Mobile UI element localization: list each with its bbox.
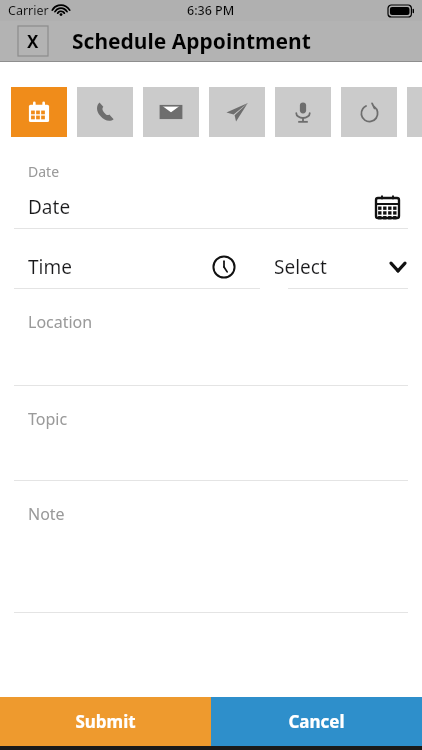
staticText: Topic (28, 408, 68, 430)
staticText: Select (274, 254, 327, 280)
button[interactable]: Location (0, 289, 422, 386)
button[interactable]: Record (275, 87, 331, 137)
staticText: 6:36 PM (187, 2, 235, 19)
staticText: Time (28, 254, 72, 280)
button[interactable]: Note (0, 481, 422, 613)
button[interactable]: Cancel (211, 697, 422, 746)
button[interactable]: Close (18, 26, 48, 56)
button[interactable]: History (341, 87, 397, 137)
staticText: Cancel (288, 710, 345, 733)
staticText: Note (28, 503, 65, 525)
staticText: Carrier (8, 2, 49, 19)
staticText: Date (28, 194, 71, 220)
button[interactable]: Select (274, 251, 408, 283)
button[interactable]: Pick date (372, 192, 402, 222)
button[interactable]: Time (0, 251, 246, 283)
button[interactable]: Call (77, 87, 133, 137)
button[interactable]: Email (143, 87, 199, 137)
other: Pick time (210, 253, 238, 281)
staticText: Submit (75, 710, 136, 733)
button[interactable]: Topic (0, 386, 422, 481)
button[interactable]: Send (209, 87, 265, 137)
staticText: Location (28, 311, 93, 333)
button[interactable]: Date (0, 192, 422, 222)
staticText: X (27, 30, 39, 53)
staticText: Schedule Appointment (72, 27, 311, 56)
staticText: Date (28, 162, 60, 181)
button[interactable]: Submit (0, 697, 211, 746)
button[interactable]: Calendar (11, 87, 67, 137)
